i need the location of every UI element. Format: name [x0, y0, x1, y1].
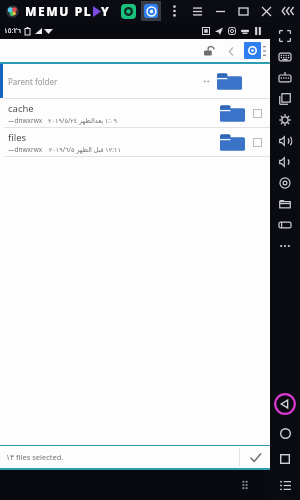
button[interactable]: Task list [275, 475, 295, 495]
button[interactable]: Location [270, 172, 300, 193]
staticText: MEMU PL [25, 3, 93, 19]
button[interactable]: Select cache [253, 109, 262, 118]
button[interactable]: Home [275, 423, 295, 443]
button[interactable]: Volume down [270, 151, 300, 172]
button[interactable]: Close [260, 5, 272, 17]
staticText: cache [8, 102, 34, 115]
button[interactable]: Toggle read only [200, 42, 218, 60]
staticText: Y [101, 3, 111, 19]
button[interactable]: Storage [244, 42, 261, 59]
button[interactable]: Select files [253, 138, 262, 147]
button[interactable]: Back [272, 391, 298, 417]
button[interactable]: Confirm selection [240, 446, 270, 468]
button[interactable]: Settings [270, 109, 300, 130]
staticText: Parent folder [8, 76, 58, 87]
button[interactable]: Minimize [214, 5, 226, 17]
staticText: —dnwxrwx [8, 116, 43, 125]
other: Paused [253, 26, 262, 35]
other: Telegram [214, 26, 223, 35]
button[interactable]: files [0, 128, 270, 156]
button[interactable]: Keyboard [270, 46, 300, 67]
button[interactable]: Keymapping [270, 67, 300, 88]
button[interactable]: Current app [144, 4, 158, 18]
button[interactable]: Drag handle [240, 480, 250, 490]
other: USB [240, 26, 249, 35]
staticText: —dnwxrwx [8, 145, 43, 154]
button[interactable]: Navigate up [222, 42, 240, 60]
button[interactable]: Rotate screen [270, 214, 300, 235]
button[interactable]: Maximize [237, 5, 249, 17]
button[interactable]: Menu [191, 5, 203, 17]
button[interactable]: Volume up [270, 130, 300, 151]
button[interactable]: Parent folder [0, 64, 270, 98]
button[interactable]: Multi window [270, 88, 300, 109]
staticText: ١٣ files selected. [6, 452, 64, 462]
button[interactable]: More [270, 235, 300, 256]
button[interactable]: Recent apps [275, 449, 295, 469]
button[interactable]: More apps [167, 4, 181, 18]
button[interactable]: cache [0, 99, 270, 127]
button[interactable]: Shared folder [270, 193, 300, 214]
button[interactable]: ١٣ files selected. [0, 446, 270, 468]
other: Screenshot [227, 26, 236, 35]
staticText: ١٥:٢٦ [4, 26, 21, 36]
button[interactable]: Collapse sidebar [281, 6, 295, 16]
button[interactable]: Running app [121, 4, 136, 19]
staticText: ١:٠٩ بعدالظهر ٢٠١٩/٥/٢٤ [48, 116, 117, 125]
button[interactable]: Fullscreen [270, 25, 300, 46]
staticText: files [8, 131, 27, 144]
other: SD card [201, 26, 210, 35]
staticText: ١٢:١١ قبل الظهر ٢٠١٩/٦/٥ [48, 145, 121, 154]
